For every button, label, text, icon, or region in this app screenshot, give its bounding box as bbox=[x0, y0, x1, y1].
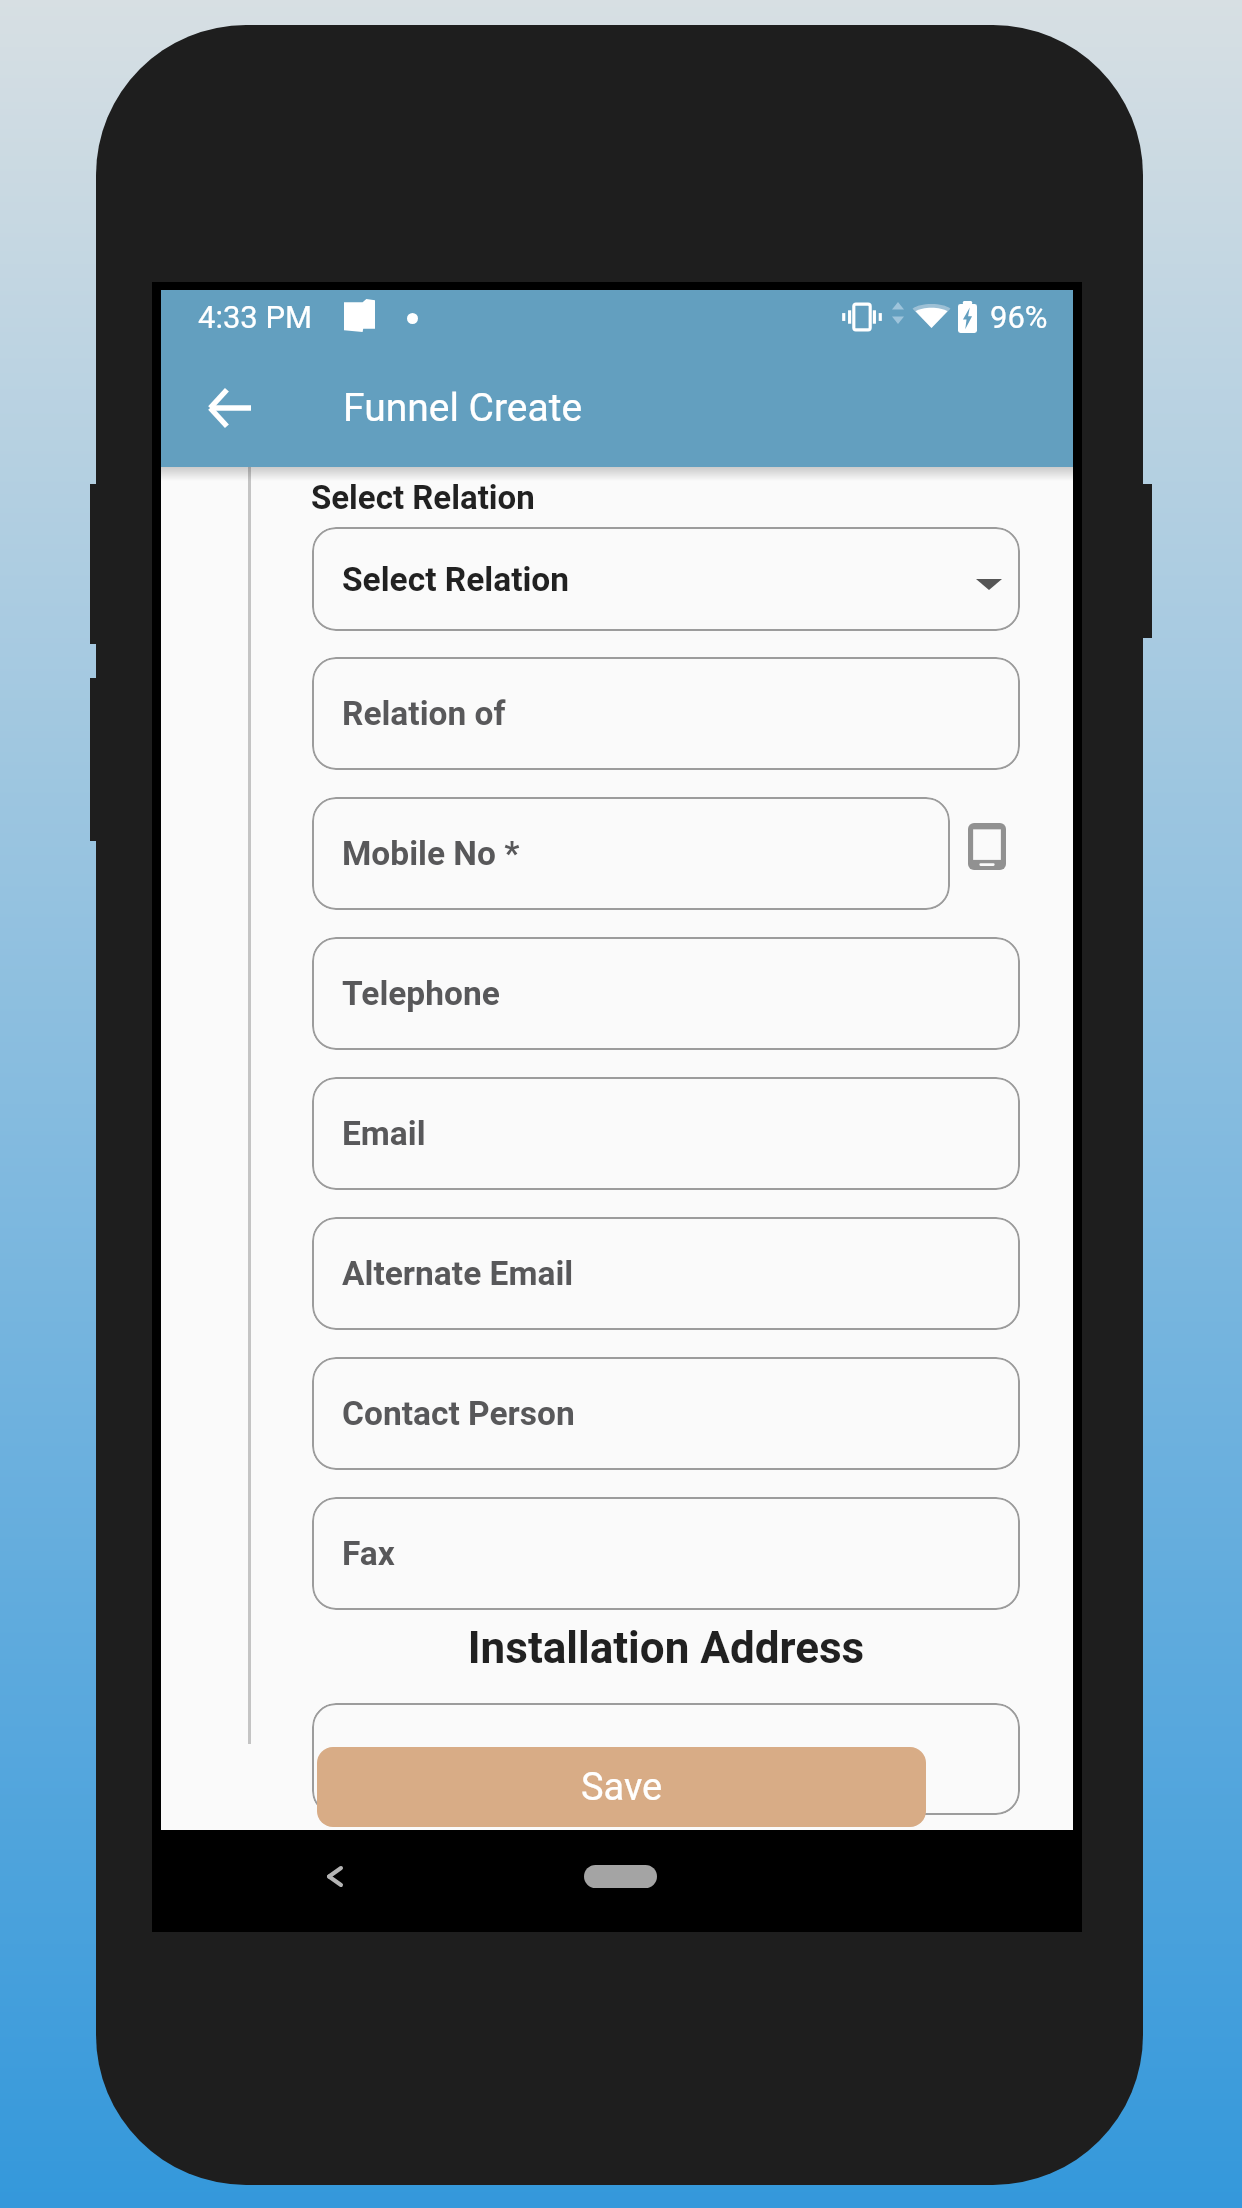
button[interactable]: Home bbox=[584, 1865, 657, 1888]
button[interactable]: Email bbox=[312, 1077, 1020, 1190]
staticText: Relation of bbox=[342, 694, 506, 733]
button[interactable]: Save bbox=[317, 1747, 926, 1827]
button[interactable]: Alternate Email bbox=[312, 1217, 1020, 1330]
staticText: Alternate Email bbox=[342, 1254, 574, 1293]
staticText: 4:33 PM bbox=[198, 299, 313, 335]
button[interactable]: Mobile No * bbox=[312, 797, 950, 910]
staticText: Email bbox=[342, 1114, 426, 1153]
staticText: Mobile No * bbox=[342, 834, 520, 873]
staticText: Installation Address bbox=[312, 1622, 1020, 1674]
button[interactable] bbox=[312, 1703, 1020, 1815]
staticText: Select Relation bbox=[342, 560, 570, 599]
button[interactable]: Mobile bbox=[968, 823, 1006, 870]
staticText: Telephone bbox=[342, 974, 500, 1013]
staticText: Contact Person bbox=[342, 1394, 575, 1433]
button[interactable]: Back bbox=[299, 1837, 371, 1915]
button[interactable]: Back bbox=[191, 375, 267, 441]
staticText: Funnel Create bbox=[343, 385, 583, 431]
staticText: Select Relation bbox=[311, 478, 535, 517]
staticText: Save bbox=[581, 1765, 663, 1810]
button[interactable]: Contact Person bbox=[312, 1357, 1020, 1470]
button[interactable]: Telephone bbox=[312, 937, 1020, 1050]
button[interactable]: Fax bbox=[312, 1497, 1020, 1610]
button[interactable]: Select Relation bbox=[312, 527, 1020, 631]
staticText: 96% bbox=[990, 299, 1048, 335]
button[interactable]: Relation of bbox=[312, 657, 1020, 770]
staticText: Fax bbox=[342, 1534, 395, 1573]
